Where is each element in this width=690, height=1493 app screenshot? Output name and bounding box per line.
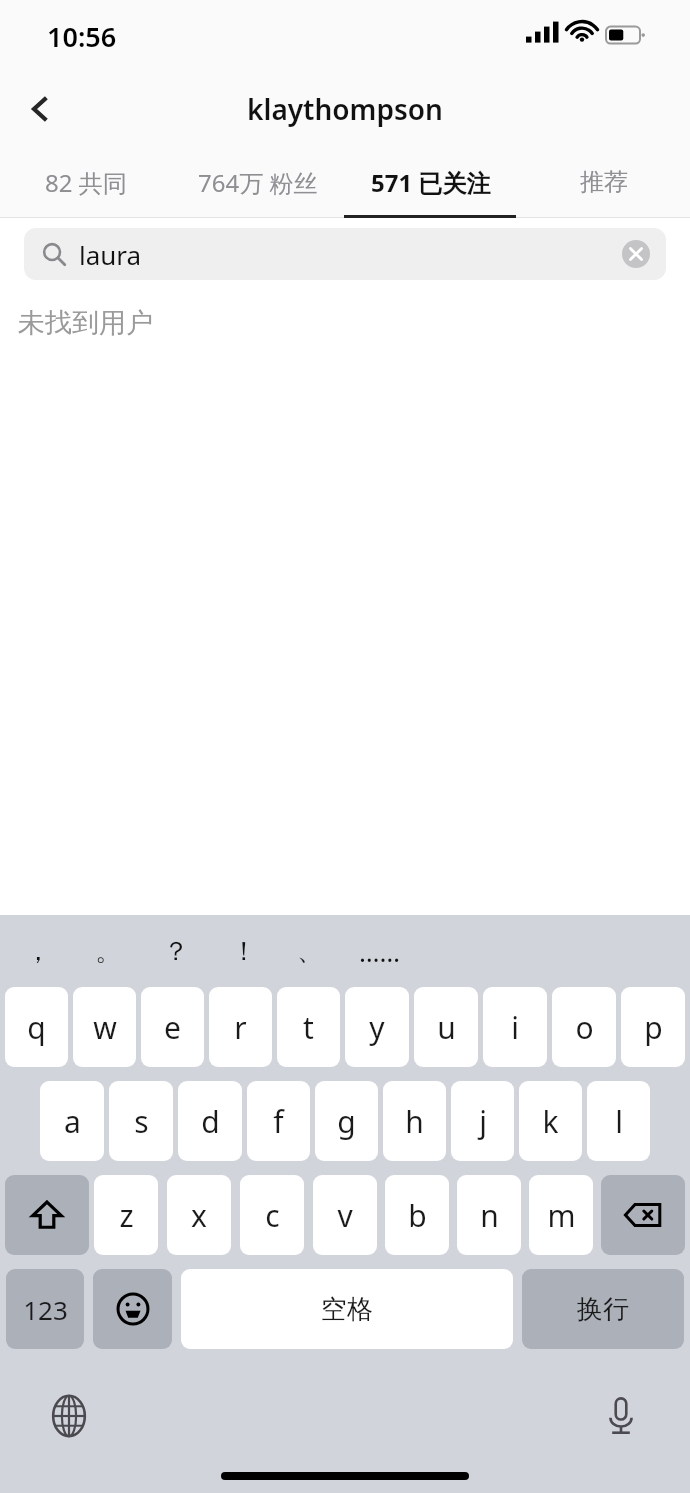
button[interactable]: q (5, 987, 68, 1067)
button[interactable]: Clear (616, 234, 656, 274)
staticText: laura (79, 237, 142, 272)
staticText: h (405, 1101, 424, 1142)
staticText: …… (359, 934, 401, 969)
button[interactable]: i (483, 987, 547, 1067)
button[interactable]: ！ (212, 915, 276, 987)
button[interactable]: f (247, 1081, 310, 1161)
button[interactable]: 空格 (181, 1269, 513, 1349)
button[interactable]: l (587, 1081, 650, 1161)
staticText: o (575, 1007, 594, 1048)
button[interactable]: 。 (76, 915, 140, 987)
staticText: k (542, 1101, 559, 1142)
staticText: 空格 (321, 1293, 373, 1326)
button[interactable]: 82 共同 (0, 146, 172, 218)
staticText: q (27, 1007, 46, 1048)
button[interactable]: 764万 粉丝 (172, 146, 344, 218)
button[interactable]: …… (348, 915, 412, 987)
button[interactable]: Switch keyboard (40, 1387, 98, 1445)
button[interactable]: 换行 (522, 1269, 684, 1349)
button[interactable]: Dictate (592, 1387, 650, 1445)
staticText: i (511, 1007, 519, 1048)
button[interactable]: Shift (5, 1175, 89, 1255)
button[interactable]: s (109, 1081, 173, 1161)
staticText: 推荐 (580, 167, 628, 197)
button[interactable]: Delete (601, 1175, 685, 1255)
staticText: b (408, 1195, 427, 1236)
button[interactable]: 571 已关注 (344, 146, 517, 218)
staticText: j (479, 1101, 487, 1142)
staticText: p (644, 1007, 663, 1048)
button[interactable]: w (73, 987, 136, 1067)
button[interactable]: k (519, 1081, 582, 1161)
button[interactable]: b (385, 1175, 449, 1255)
button[interactable]: a (40, 1081, 104, 1161)
button[interactable]: z (94, 1175, 158, 1255)
button[interactable]: c (240, 1175, 304, 1255)
button[interactable]: ？ (144, 915, 208, 987)
staticText: 换行 (577, 1293, 629, 1326)
staticText: g (337, 1101, 356, 1142)
button[interactable]: ， (6, 915, 70, 987)
staticText: e (164, 1007, 181, 1048)
button[interactable]: p (621, 987, 685, 1067)
button[interactable]: n (457, 1175, 521, 1255)
button[interactable]: 123 (6, 1269, 84, 1349)
staticText: t (303, 1007, 314, 1048)
button[interactable]: Emoji (93, 1269, 172, 1349)
staticText: ！ (231, 935, 257, 968)
staticText: ， (25, 935, 51, 968)
staticText: u (437, 1007, 456, 1048)
button[interactable]: e (141, 987, 204, 1067)
staticText: 。 (95, 935, 121, 968)
staticText: ？ (163, 935, 189, 968)
button[interactable]: x (167, 1175, 231, 1255)
staticText: m (547, 1195, 576, 1236)
staticText: 82 共同 (45, 166, 127, 199)
button[interactable]: g (315, 1081, 378, 1161)
staticText: r (234, 1007, 247, 1048)
button[interactable]: v (313, 1175, 377, 1255)
button[interactable]: d (178, 1081, 242, 1161)
staticText: y (369, 1007, 385, 1048)
button[interactable]: y (345, 987, 409, 1067)
staticText: 、 (297, 935, 323, 968)
staticText: 未找到用户 (18, 306, 153, 340)
button[interactable]: 、 (278, 915, 342, 987)
staticText: s (134, 1101, 149, 1142)
staticText: n (480, 1195, 499, 1236)
button[interactable]: u (414, 987, 478, 1067)
staticText: l (615, 1101, 623, 1142)
staticText: c (265, 1195, 280, 1236)
staticText: v (337, 1195, 353, 1236)
button[interactable]: r (209, 987, 272, 1067)
staticText: 123 (23, 1292, 68, 1327)
button[interactable]: laura (24, 228, 666, 280)
staticText: 571 已关注 (371, 166, 491, 199)
staticText: a (64, 1101, 81, 1142)
button[interactable]: o (552, 987, 616, 1067)
staticText: d (201, 1101, 220, 1142)
staticText: klaythompson (247, 90, 443, 128)
staticText: w (93, 1007, 117, 1048)
staticText: x (191, 1195, 207, 1236)
button[interactable]: h (383, 1081, 446, 1161)
staticText: f (273, 1101, 284, 1142)
staticText: 764万 粉丝 (198, 166, 318, 199)
button[interactable]: 推荐 (517, 146, 690, 218)
button[interactable]: j (451, 1081, 514, 1161)
staticText: 10:56 (47, 18, 117, 55)
staticText: z (119, 1195, 134, 1236)
button[interactable]: m (529, 1175, 593, 1255)
button[interactable]: Back (12, 81, 68, 137)
button[interactable]: t (277, 987, 340, 1067)
